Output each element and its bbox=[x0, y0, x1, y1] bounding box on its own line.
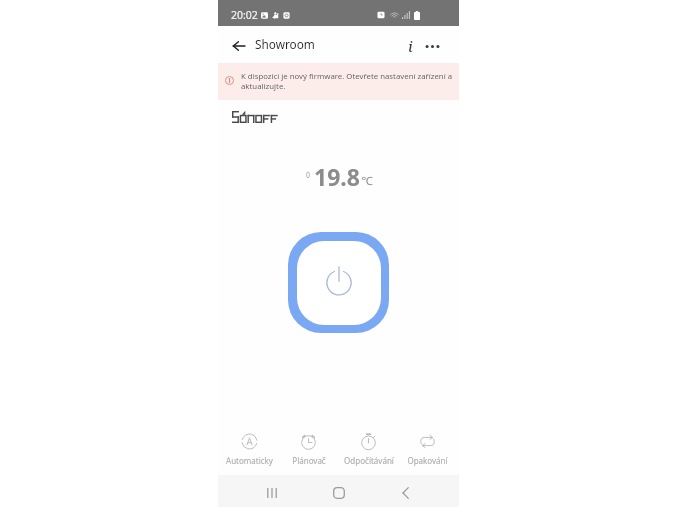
button[interactable]: Back bbox=[227, 34, 251, 58]
button[interactable]: Automaticky bbox=[220, 433, 279, 466]
button[interactable]: Back bbox=[391, 479, 419, 507]
staticText: 19.8 bbox=[314, 161, 360, 192]
button[interactable]: Plánovač bbox=[279, 433, 338, 466]
button[interactable]: Recents bbox=[258, 479, 286, 507]
staticText: ℃ bbox=[361, 173, 373, 189]
button[interactable]: More options bbox=[421, 35, 443, 57]
button[interactable]: Info bbox=[399, 34, 421, 56]
button[interactable]: Odpočítávání bbox=[339, 433, 398, 466]
staticText: Opakování bbox=[407, 455, 448, 466]
button[interactable]: Power toggle bbox=[288, 232, 389, 333]
staticText: K dispozici je nový firmware. Otevřete n… bbox=[241, 71, 455, 91]
button[interactable]: Opakování bbox=[398, 433, 457, 466]
staticText: Odpočítávání bbox=[344, 455, 394, 466]
staticText: i bbox=[408, 36, 413, 56]
staticText: Automaticky bbox=[226, 455, 273, 466]
button[interactable]: Home bbox=[325, 479, 353, 507]
staticText: Showroom bbox=[255, 36, 315, 52]
staticText: 20:02 bbox=[231, 8, 258, 22]
staticText: Plánovač bbox=[292, 455, 326, 466]
